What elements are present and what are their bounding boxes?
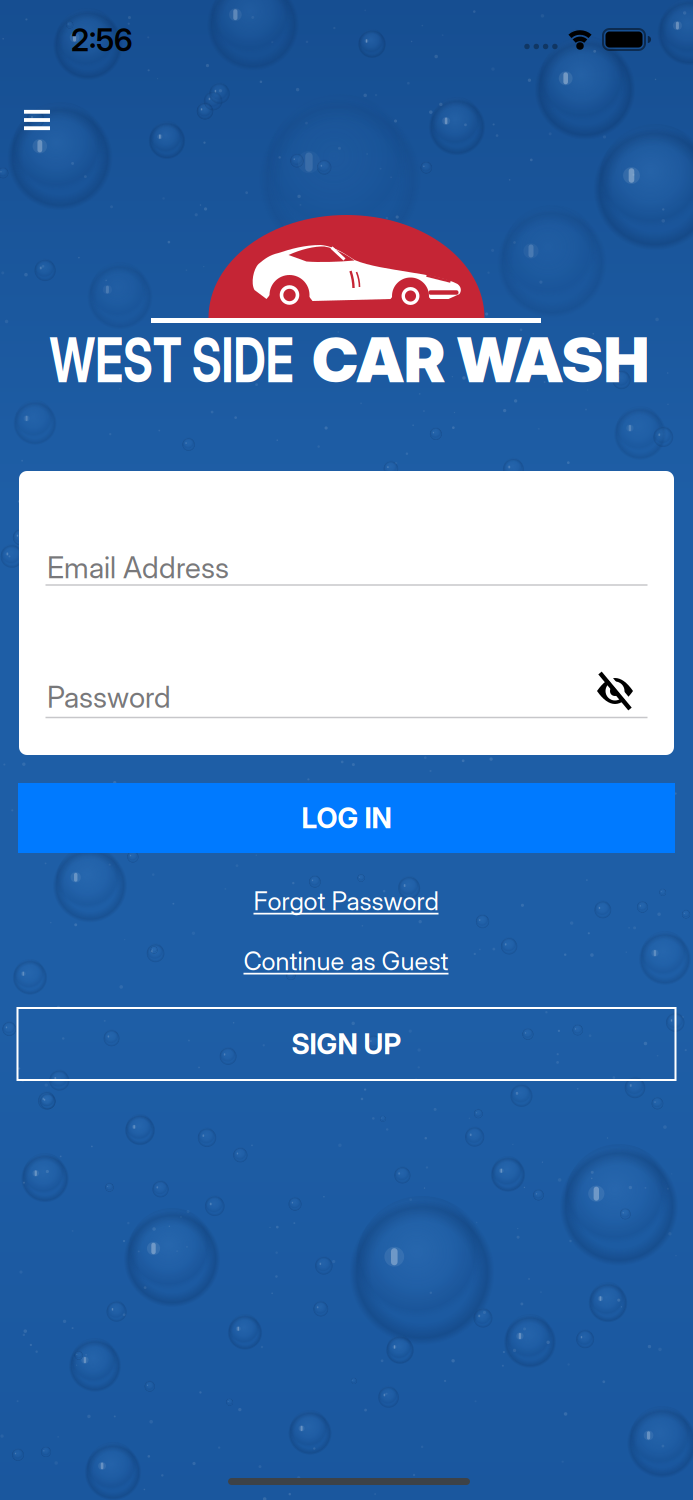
staticText: Password [47, 680, 171, 714]
button[interactable]: Menu [15, 100, 59, 140]
staticText: CAR WASH [315, 324, 646, 396]
staticText: WEST SIDE [8, 324, 334, 396]
button[interactable]: Show password [596, 669, 636, 713]
button[interactable]: LOG IN [18, 783, 675, 853]
staticText: Email Address [47, 550, 229, 585]
staticText: Forgot Password [253, 886, 438, 916]
button[interactable]: SIGN UP [17, 1008, 675, 1080]
staticText: Continue as Guest [243, 946, 448, 976]
button[interactable]: Forgot Password [253, 886, 438, 916]
staticText: 2:56 [71, 22, 133, 58]
staticText: LOG IN [301, 801, 391, 834]
staticText: SIGN UP [291, 1027, 401, 1060]
button[interactable]: Continue as Guest [243, 946, 448, 976]
